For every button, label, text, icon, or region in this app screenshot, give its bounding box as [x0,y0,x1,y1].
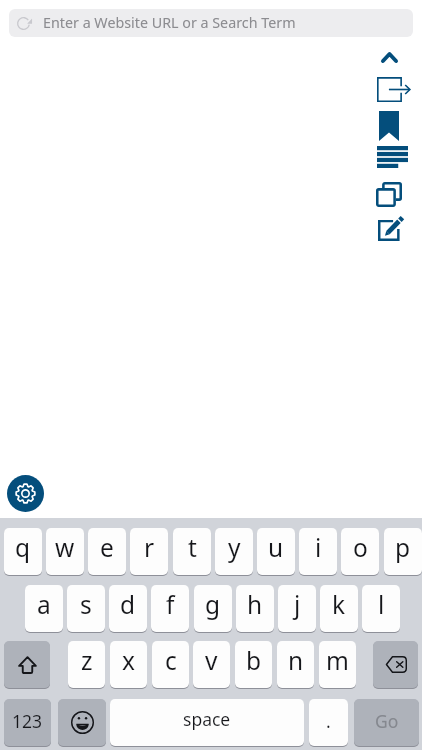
button[interactable]: Numbers [4,699,51,746]
button[interactable]: v [193,641,230,688]
staticText: r [144,531,155,564]
staticText: p [395,531,411,564]
button[interactable]: Backspace [373,641,418,688]
button[interactable]: h [236,585,274,632]
staticText: h [247,588,263,621]
staticText: v [205,644,218,677]
button[interactable]: i [299,528,337,575]
button[interactable]: l [362,585,400,632]
button[interactable]: s [67,585,105,632]
button[interactable]: c [152,641,189,688]
button[interactable]: k [320,585,358,632]
button[interactable]: Shift [4,641,50,688]
button[interactable]: o [341,528,379,575]
staticText: f [166,588,175,621]
button[interactable]: space [110,699,304,746]
staticText: d [120,588,136,621]
button[interactable]: Go [354,699,419,746]
staticText: e [100,531,114,564]
button[interactable]: . [309,699,348,746]
button[interactable]: Compose [373,211,409,246]
button[interactable]: u [257,528,295,575]
staticText: g [205,588,221,621]
button[interactable]: j [278,585,316,632]
button[interactable]: Emoji [58,699,106,746]
staticText: n [288,644,304,677]
button[interactable]: d [109,585,147,632]
staticText: s [80,588,92,621]
staticText: y [228,531,241,564]
staticText: k [332,588,346,621]
button[interactable]: p [384,528,422,575]
button[interactable]: x [110,641,147,688]
button[interactable]: n [277,641,314,688]
button[interactable]: w [46,528,84,575]
staticText: Go [375,709,399,733]
button[interactable]: Enter a Website URL or a Search Term [9,9,413,37]
staticText: j [294,588,301,621]
button[interactable]: f [151,585,189,632]
staticText: 123 [12,709,43,733]
staticText: Enter a Website URL or a Search Term [43,13,296,32]
staticText: t [188,531,197,564]
staticText: m [326,644,349,677]
staticText: space [183,707,231,731]
button[interactable]: a [25,585,63,632]
staticText: z [81,644,93,677]
button[interactable]: Settings [7,475,44,512]
button[interactable]: z [68,641,105,688]
staticText: u [268,531,284,564]
button[interactable]: q [4,528,42,575]
button[interactable]: Bookmark [374,106,404,146]
staticText: a [37,588,51,621]
button[interactable]: m [319,641,356,688]
staticText: q [15,531,31,564]
staticText: c [165,644,177,677]
button[interactable]: g [194,585,232,632]
staticText: o [353,531,368,564]
staticText: i [315,531,322,564]
staticText: w [55,531,75,564]
button[interactable]: Tabs [371,177,407,212]
button[interactable]: Scroll up [376,47,403,68]
button[interactable]: t [173,528,211,575]
staticText: x [122,644,135,677]
button[interactable]: e [88,528,126,575]
staticText: . [326,709,331,733]
button[interactable]: b [235,641,272,688]
button[interactable]: r [130,528,168,575]
button[interactable]: Share [372,72,416,107]
staticText: l [378,588,385,621]
button[interactable]: y [215,528,253,575]
button[interactable]: Reading list [372,141,413,173]
staticText: b [246,644,262,677]
